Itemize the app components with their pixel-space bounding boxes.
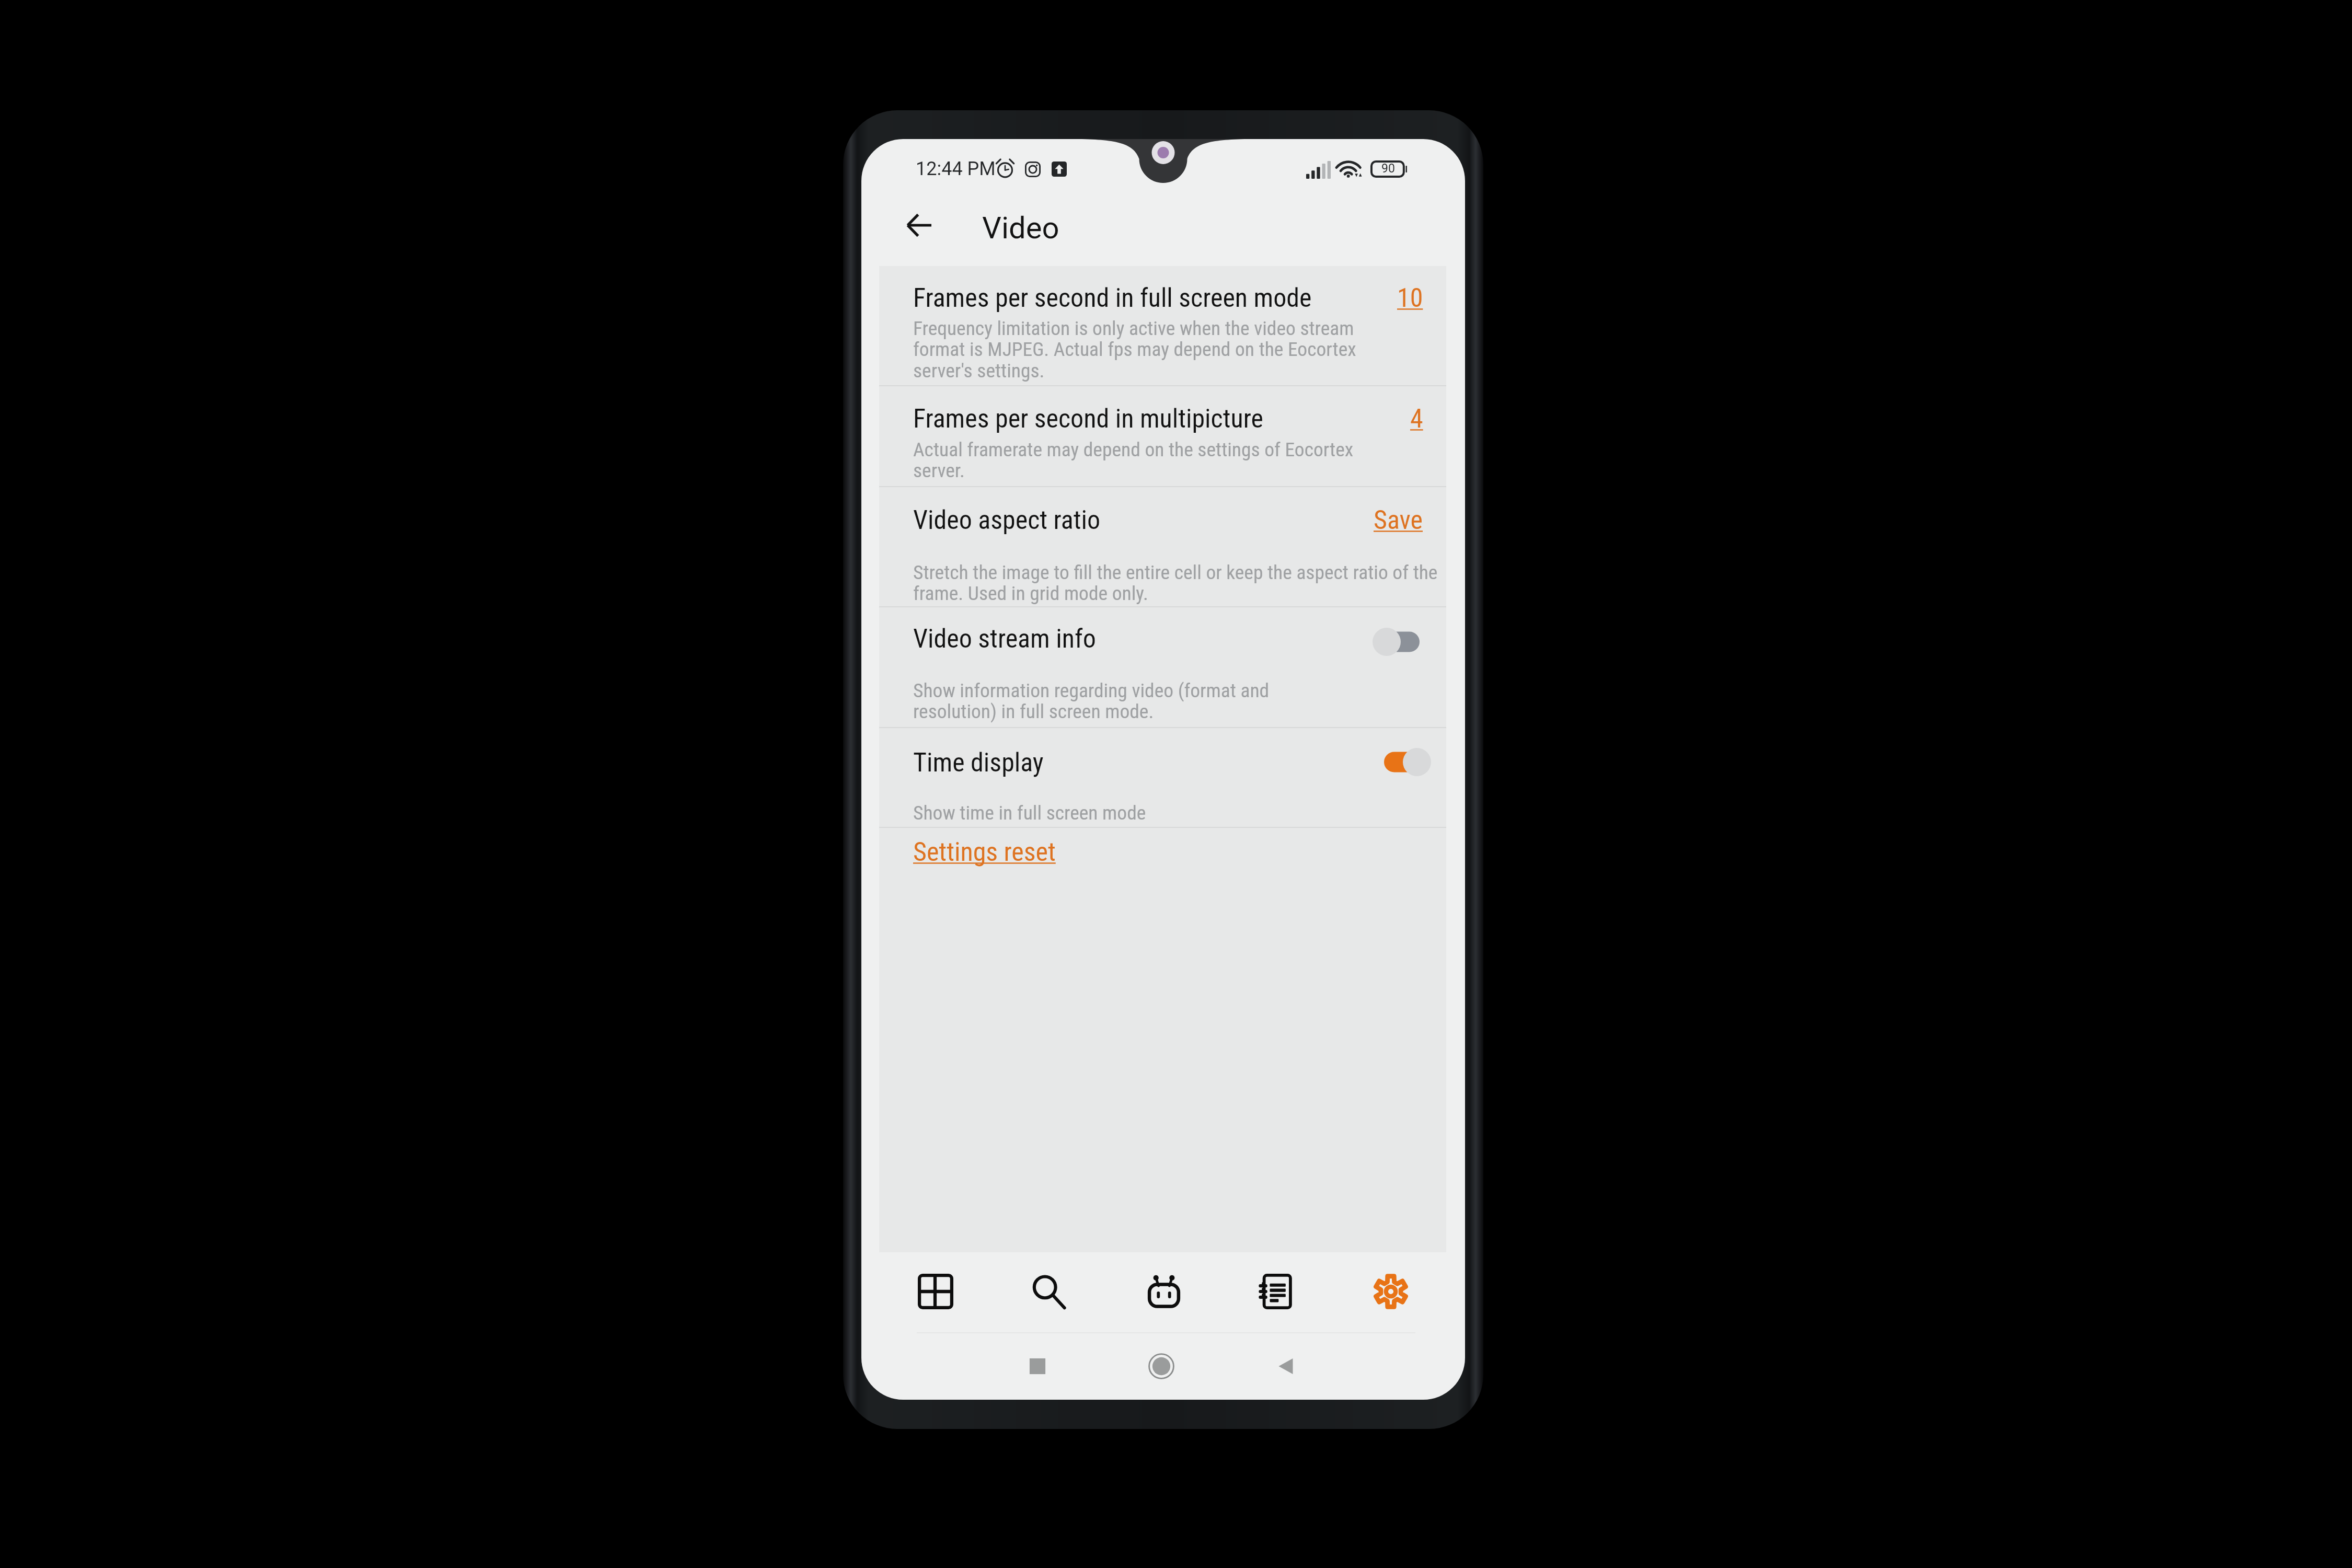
button[interactable]: Time display <box>879 727 1446 827</box>
staticText: 10 <box>1397 283 1423 314</box>
staticText: Save <box>1374 505 1423 536</box>
staticText: 90 <box>1381 162 1395 176</box>
button[interactable]: Grid view <box>901 1257 970 1326</box>
button[interactable]: Assistant <box>1129 1257 1198 1326</box>
button[interactable]: Recents <box>1009 1338 1066 1395</box>
staticText: Time display <box>913 747 1044 778</box>
button[interactable]: Home <box>1133 1338 1190 1395</box>
button[interactable]: Frames per second in multipicture <box>879 385 1446 486</box>
staticText: 4 <box>1410 403 1423 434</box>
staticText: Settings reset <box>913 837 1056 868</box>
button[interactable]: Back <box>890 196 948 255</box>
staticText: Show time in full screen mode <box>913 801 1357 824</box>
button[interactable]: Video stream info <box>879 606 1446 727</box>
button[interactable]: Events <box>1240 1257 1309 1326</box>
staticText: Frames per second in multipicture <box>913 403 1263 434</box>
staticText: Video <box>982 210 1059 246</box>
button[interactable]: Frames per second in full screen mode <box>879 266 1446 385</box>
button[interactable]: Back <box>1258 1338 1315 1395</box>
button[interactable]: Settings <box>1356 1257 1425 1326</box>
staticText: Video stream info <box>913 624 1096 654</box>
staticText: Frequency limitation is only active when… <box>913 317 1357 382</box>
button[interactable]: Search <box>1014 1257 1083 1326</box>
button[interactable]: Settings reset <box>879 827 1446 890</box>
staticText: Stretch the image to fill the entire cel… <box>913 561 1438 605</box>
staticText: Actual framerate may depend on the setti… <box>913 438 1357 482</box>
button[interactable]: Video aspect ratio <box>879 486 1446 606</box>
staticText: Frames per second in full screen mode <box>913 283 1312 314</box>
staticText: 12:44 PM <box>916 158 996 180</box>
staticText: Show information regarding video (format… <box>913 679 1310 723</box>
staticText: Video aspect ratio <box>913 505 1101 536</box>
